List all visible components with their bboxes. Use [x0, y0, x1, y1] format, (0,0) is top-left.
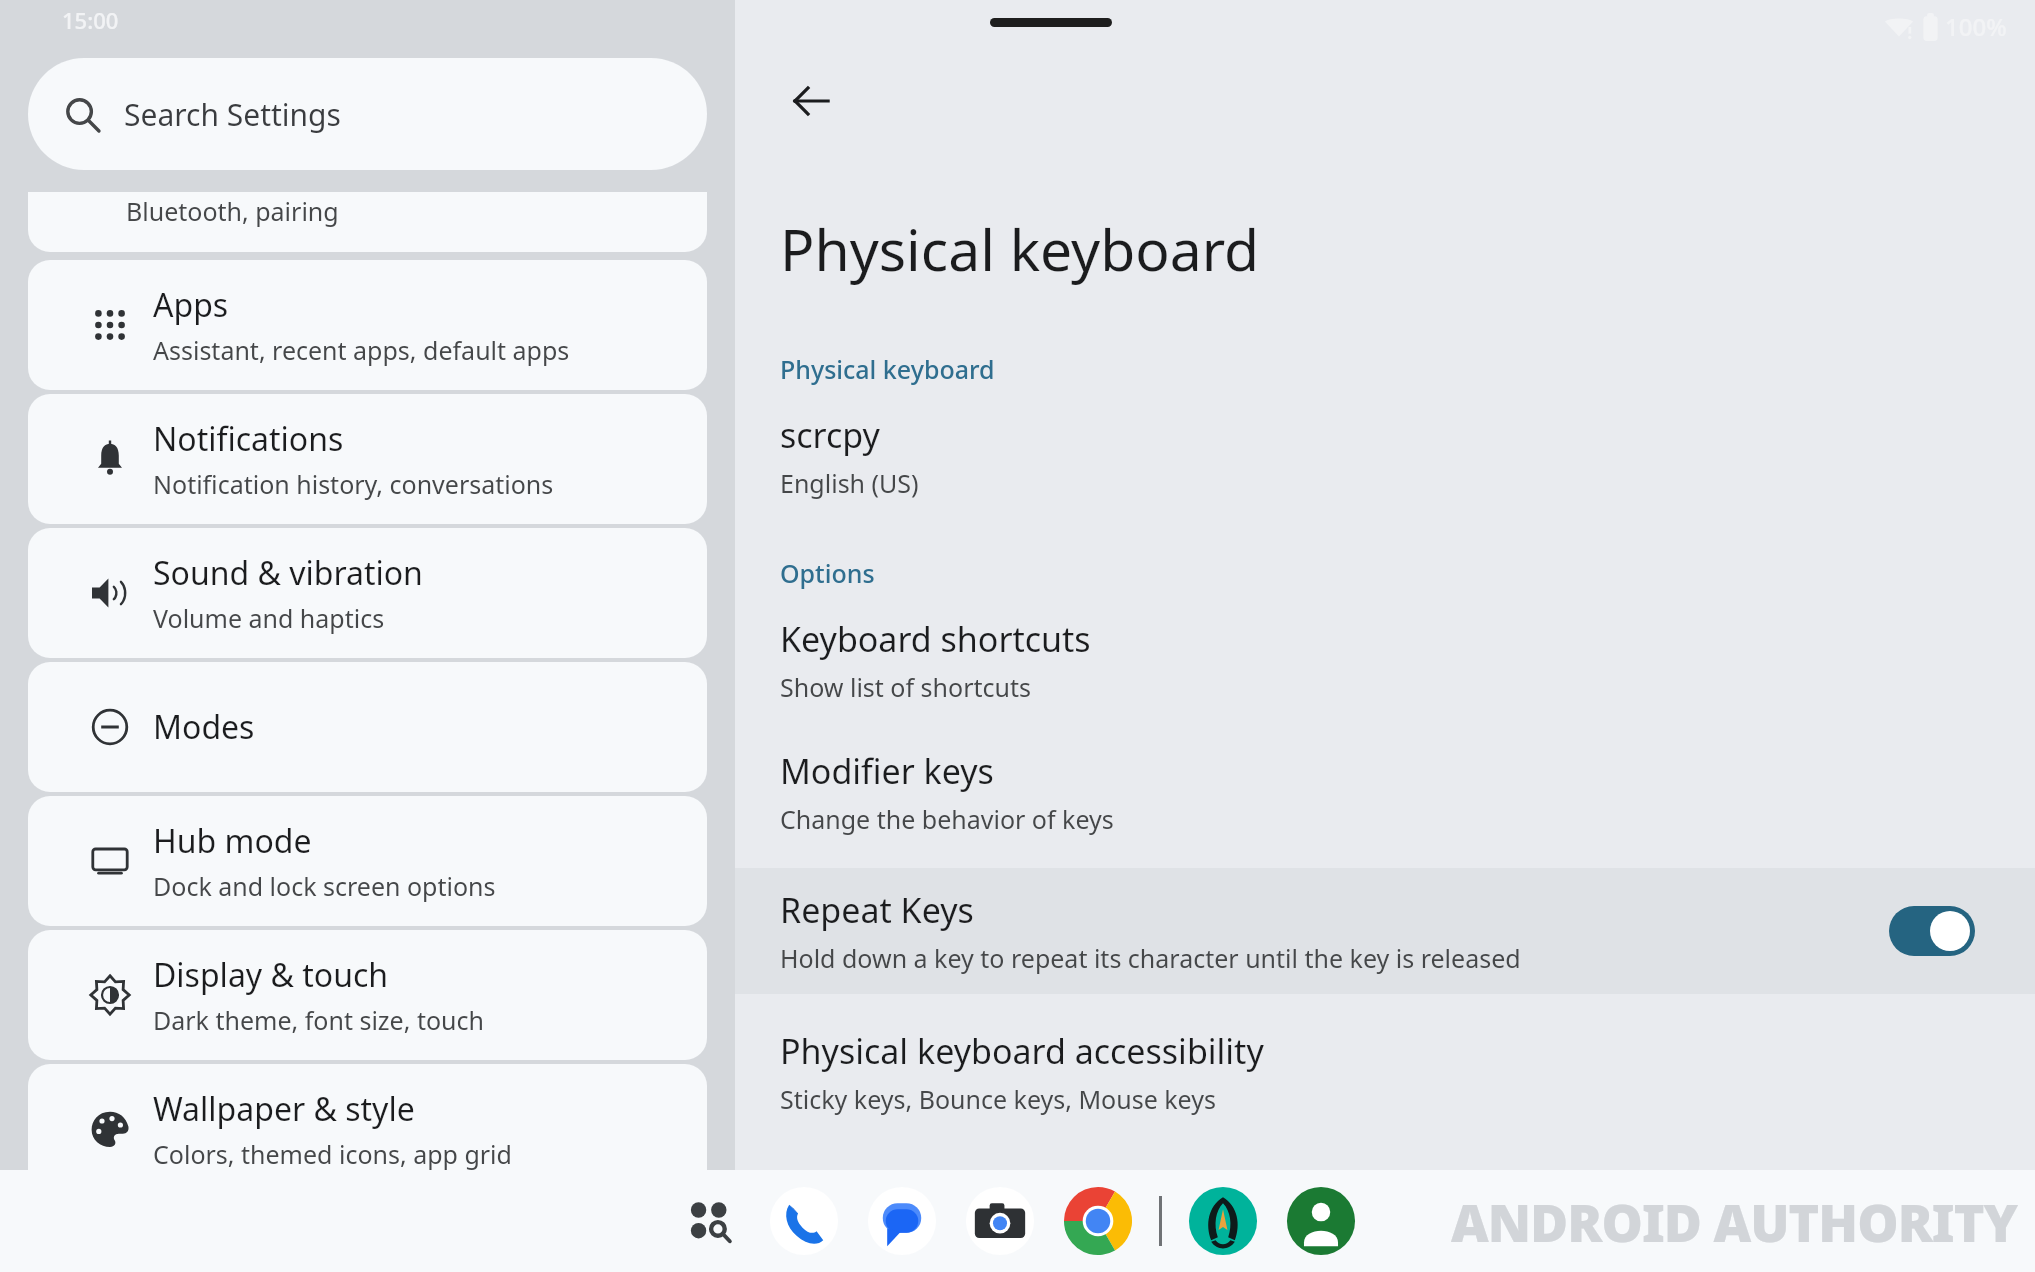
button[interactable]: Apps	[28, 260, 707, 390]
button[interactable]: Display & touch	[28, 930, 707, 1060]
button[interactable]: Physical keyboard accessibility	[735, 1024, 2035, 1120]
button[interactable]: Hub mode	[28, 796, 707, 926]
staticText: Sound & vibration	[153, 551, 423, 595]
button[interactable]: Repeat Keys toggle	[1889, 906, 1975, 956]
staticText: Change the behavior of keys	[780, 802, 1114, 836]
staticText: Assistant, recent apps, default apps	[153, 333, 570, 367]
button[interactable]: Sound & vibration	[28, 528, 707, 658]
staticText: Notifications	[153, 417, 344, 461]
button[interactable]: Keyboard shortcuts	[735, 612, 2035, 708]
staticText: Volume and haptics	[153, 601, 385, 635]
staticText: Display & touch	[153, 953, 389, 997]
button[interactable]: scrcpy	[735, 408, 2035, 504]
button[interactable]: Chrome	[1061, 1184, 1135, 1258]
staticText: Physical keyboard	[780, 210, 1260, 288]
button[interactable]: Magisk	[1186, 1184, 1260, 1258]
staticText: 100%	[1945, 10, 2007, 43]
staticText: Show list of shortcuts	[780, 670, 1031, 704]
staticText: Wallpaper & style	[153, 1087, 415, 1131]
staticText: Modifier keys	[780, 748, 994, 794]
staticText: 15:00	[62, 5, 119, 35]
button[interactable]: Camera	[963, 1184, 1037, 1258]
staticText: Hold down a key to repeat its character …	[780, 941, 1521, 975]
staticText: Apps	[153, 283, 229, 327]
staticText: Hub mode	[153, 819, 312, 863]
staticText: Notification history, conversations	[153, 467, 554, 501]
staticText: Sticky keys, Bounce keys, Mouse keys	[780, 1082, 1216, 1116]
button[interactable]: Modifier keys	[735, 744, 2035, 840]
button[interactable]: Search Settings	[28, 58, 707, 170]
staticText: Modes	[153, 705, 255, 749]
staticText: Dock and lock screen options	[153, 869, 496, 903]
button[interactable]: Bluetooth, pairing	[28, 192, 707, 252]
staticText: Colors, themed icons, app grid	[153, 1137, 512, 1171]
staticText: Search Settings	[124, 94, 341, 135]
button[interactable]: Wallpaper & style	[28, 1064, 707, 1194]
staticText: ANDROID AUTHORITY	[1451, 1186, 2017, 1257]
staticText: Physical keyboard accessibility	[780, 1028, 1264, 1074]
staticText: Repeat Keys	[780, 887, 974, 933]
button[interactable]: Modes	[28, 662, 707, 792]
staticText: Physical keyboard	[780, 352, 995, 386]
button[interactable]: Contacts	[1284, 1184, 1358, 1258]
button[interactable]: Back	[780, 70, 842, 132]
button[interactable]: All apps	[677, 1188, 743, 1254]
staticText: Dark theme, font size, touch	[153, 1003, 484, 1037]
button[interactable]: Repeat Keys	[735, 868, 2035, 994]
staticText: scrcpy	[780, 412, 880, 458]
staticText: English (US)	[780, 466, 919, 500]
button[interactable]: Notifications	[28, 394, 707, 524]
staticText: Bluetooth, pairing	[126, 194, 339, 228]
staticText: Keyboard shortcuts	[780, 616, 1091, 662]
staticText: Options	[780, 556, 875, 590]
button[interactable]: Messages	[865, 1184, 939, 1258]
button[interactable]: Phone	[767, 1184, 841, 1258]
